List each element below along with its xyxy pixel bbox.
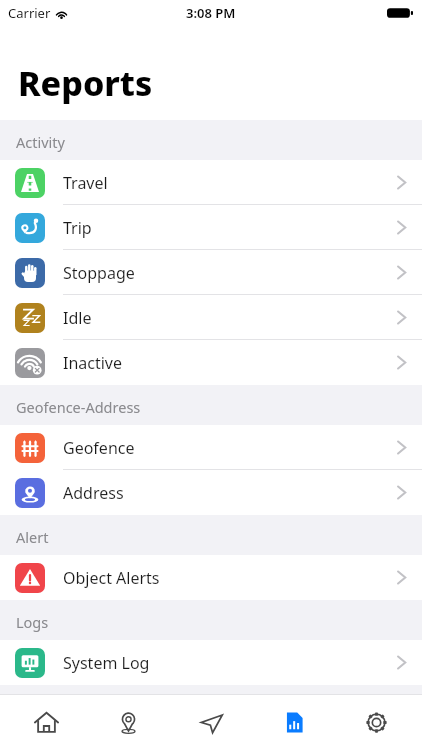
button[interactable]: Address xyxy=(0,470,422,515)
staticText: Idle xyxy=(63,307,92,329)
staticText: System Log xyxy=(63,652,150,674)
staticText: Activity xyxy=(16,132,65,152)
button[interactable]: Trip xyxy=(0,205,422,250)
staticText: Reports xyxy=(18,60,153,106)
staticText: Geofence-Address xyxy=(16,397,141,417)
button[interactable]: Travel xyxy=(0,160,422,205)
staticText: Stoppage xyxy=(63,262,135,284)
staticText: Alert xyxy=(16,527,49,547)
button[interactable]: Navigate xyxy=(174,695,248,750)
button[interactable]: System Log xyxy=(0,640,422,685)
button[interactable]: Reports xyxy=(257,695,331,750)
button[interactable]: Idle xyxy=(0,295,422,340)
staticText: Object Alerts xyxy=(63,567,160,589)
staticText: Carrier xyxy=(8,4,51,22)
staticText: Geofence xyxy=(63,437,135,459)
staticText: Trip xyxy=(63,217,92,239)
staticText: Logs xyxy=(16,612,49,632)
staticText: Travel xyxy=(63,172,108,194)
button[interactable]: Inactive xyxy=(0,340,422,385)
staticText: 3:08 PM xyxy=(186,4,236,22)
button[interactable]: Home xyxy=(9,695,83,750)
button[interactable]: Geofence xyxy=(0,425,422,470)
button[interactable]: Object Alerts xyxy=(0,555,422,600)
staticText: Inactive xyxy=(63,352,123,374)
button[interactable]: Stoppage xyxy=(0,250,422,295)
button[interactable]: Settings xyxy=(339,695,413,750)
button[interactable]: Places xyxy=(91,695,165,750)
staticText: Address xyxy=(63,482,124,504)
